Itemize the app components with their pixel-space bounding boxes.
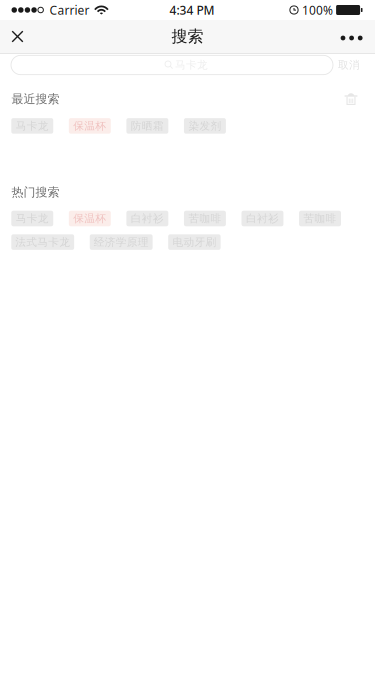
staticText: 白衬衫	[246, 212, 279, 225]
staticText: 取消	[338, 58, 360, 71]
button[interactable]: 保温杯	[69, 211, 111, 226]
staticText: 马卡龙	[16, 119, 49, 132]
button[interactable]: 染发剂	[184, 118, 226, 134]
staticText: 100%	[302, 2, 333, 18]
button[interactable]: 法式马卡龙	[11, 234, 74, 250]
staticText: 搜索	[171, 27, 203, 46]
staticText: 经济学原理	[94, 235, 149, 249]
staticText: Carrier	[49, 2, 89, 18]
button[interactable]: 苦咖啡	[184, 211, 226, 226]
button[interactable]: More	[327, 20, 375, 53]
staticText: 电动牙刷	[172, 235, 216, 249]
staticText: 防晒霜	[131, 119, 164, 132]
button[interactable]: 取消	[333, 55, 365, 75]
staticText: 马卡龙	[16, 212, 49, 225]
staticText: 染发剂	[188, 119, 221, 132]
button[interactable]: 白衬衫	[241, 211, 283, 226]
staticText: 热门搜索	[11, 185, 59, 199]
staticText: 最近搜索	[11, 92, 59, 106]
button[interactable]: 防晒霜	[126, 118, 168, 134]
button[interactable]: Close	[0, 20, 37, 53]
button[interactable]: 经济学原理	[90, 234, 153, 250]
staticText: 法式马卡龙	[15, 235, 70, 249]
staticText: 4:34 PM	[169, 2, 214, 18]
button[interactable]: 电动牙刷	[168, 234, 221, 250]
staticText: 苦咖啡	[303, 212, 336, 225]
staticText: 保温杯	[73, 119, 106, 132]
staticText: 保温杯	[73, 212, 106, 225]
staticText: 白衬衫	[131, 212, 164, 225]
staticText: 苦咖啡	[188, 212, 221, 225]
staticText: 马卡龙	[175, 58, 208, 71]
button[interactable]: 苦咖啡	[299, 211, 341, 226]
button[interactable]: Clear recent searches	[345, 93, 357, 105]
button[interactable]: 保温杯	[69, 118, 111, 134]
button[interactable]: 马卡龙	[11, 118, 53, 134]
button[interactable]: 白衬衫	[126, 211, 168, 226]
button[interactable]: 马卡龙	[11, 211, 53, 226]
